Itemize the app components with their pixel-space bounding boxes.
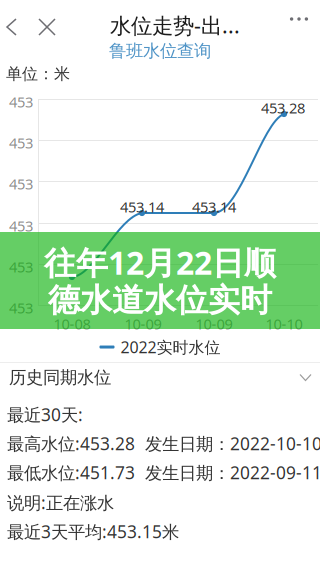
staticText: 453 — [9, 133, 33, 152]
button[interactable]: Back — [0, 11, 27, 43]
staticText: 453.14 — [120, 197, 164, 216]
staticText: 10-08 — [53, 314, 90, 333]
staticText: 453 — [9, 174, 33, 193]
staticText: 453 — [9, 92, 33, 111]
staticText: 453.14 — [192, 197, 236, 216]
staticText: 最高水位:453.28 发生日期：2022-10-10 — [7, 432, 320, 455]
staticText: 最近3天平均:453.15米 — [7, 520, 179, 543]
staticText: 德水道水位实时 — [48, 281, 272, 320]
button[interactable]: Close — [29, 11, 65, 43]
staticText: 453 — [9, 257, 33, 276]
staticText: 10-09 — [124, 314, 161, 333]
staticText: 453 — [9, 216, 33, 235]
staticText: 453.28 — [261, 98, 305, 117]
staticText: 往年12月22日顺 — [44, 241, 276, 284]
button[interactable]: 历史同期水位 — [0, 362, 320, 393]
staticText: 最低水位:451.73 发生日期：2022-09-11 — [7, 461, 320, 484]
staticText: 历史同期水位 — [9, 367, 111, 388]
staticText: 说明:正在涨水 — [7, 491, 114, 514]
button[interactable]: 鲁班水位查询 — [0, 40, 320, 62]
staticText: 10-09 — [195, 314, 232, 333]
staticText: 453 — [9, 298, 33, 317]
staticText: 10-10 — [265, 314, 302, 333]
button[interactable]: More — [281, 3, 317, 35]
staticText: 单位：米 — [6, 64, 70, 84]
staticText: 鲁班水位查询 — [109, 40, 211, 62]
staticText: 2022实时水位 — [120, 336, 220, 358]
staticText: 水位走势-出... — [110, 11, 240, 39]
staticText: 最近30天: — [7, 403, 83, 426]
